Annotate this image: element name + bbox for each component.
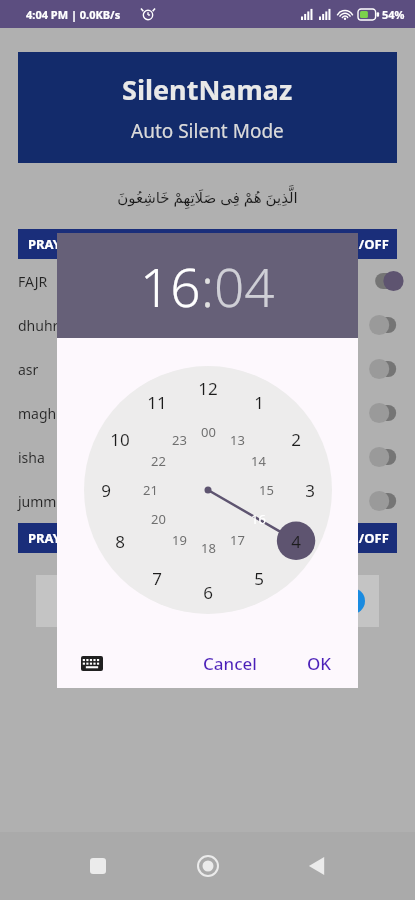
button[interactable]: Recent apps bbox=[80, 848, 116, 884]
button[interactable]: 16 bbox=[140, 250, 201, 322]
staticText: ON/OFF bbox=[338, 529, 389, 547]
staticText: 2 bbox=[291, 428, 301, 451]
staticText: 54% bbox=[382, 7, 405, 22]
button[interactable]: SilentNamaz bbox=[18, 52, 397, 163]
staticText: asr bbox=[18, 360, 357, 379]
staticText: FROM bbox=[140, 529, 239, 547]
staticText: AdMob Adaptive Banner bbox=[58, 598, 230, 618]
staticText: 20 bbox=[151, 510, 166, 528]
staticText: TO bbox=[239, 529, 338, 547]
button[interactable]: Home bbox=[190, 848, 226, 884]
staticText: الَّذِينَ هُمْ فِى صَلَاتِهِمْ خَاشِعُون… bbox=[0, 187, 415, 207]
button[interactable]: maghrib bbox=[0, 391, 415, 435]
button[interactable]: Cancel bbox=[189, 644, 271, 683]
staticText: 4:04 PM | 0.0KB/s bbox=[26, 7, 121, 22]
staticText: 23 bbox=[172, 431, 187, 449]
staticText: 8 bbox=[115, 530, 125, 553]
button[interactable]: developers.google.com bbox=[36, 575, 379, 627]
staticText: 3 bbox=[305, 479, 315, 502]
staticText: Auto Silent Mode bbox=[131, 118, 284, 144]
staticText: 14 bbox=[251, 452, 266, 470]
staticText: 10 bbox=[110, 428, 130, 451]
staticText: developers.google.com bbox=[58, 584, 157, 596]
staticText: maghrib bbox=[18, 404, 357, 423]
staticText: jumma bbox=[18, 492, 357, 511]
staticText: PRAYERS bbox=[28, 235, 140, 253]
staticText: 4 bbox=[291, 530, 301, 553]
staticText: 12 bbox=[198, 377, 218, 400]
button[interactable]: 04 bbox=[214, 250, 275, 322]
button[interactable]: Back bbox=[299, 848, 335, 884]
staticText: 21 bbox=[143, 481, 158, 499]
staticText: Test Ad bbox=[183, 584, 228, 602]
staticText: 16 bbox=[251, 510, 266, 528]
staticText: OK bbox=[307, 652, 332, 675]
staticText: 11 bbox=[147, 391, 167, 414]
staticText: FAJR bbox=[18, 272, 357, 291]
staticText: : bbox=[201, 250, 214, 322]
staticText: 1 bbox=[254, 391, 264, 414]
button[interactable]: 12 bbox=[84, 366, 332, 614]
staticText: 18 bbox=[201, 539, 216, 557]
staticText: PRAYERS bbox=[28, 529, 140, 547]
staticText: dhuhr bbox=[18, 316, 357, 335]
staticText: 6 bbox=[203, 581, 213, 604]
staticText: 5 bbox=[254, 567, 264, 590]
button[interactable]: Switch to keyboard input bbox=[77, 648, 107, 678]
staticText: 15 bbox=[259, 481, 274, 499]
button[interactable]: asr bbox=[0, 347, 415, 391]
staticText: 7 bbox=[152, 567, 162, 590]
button[interactable]: dhuhr bbox=[0, 303, 415, 347]
staticText: 13 bbox=[230, 431, 245, 449]
button[interactable]: FAJR bbox=[0, 259, 415, 303]
staticText: SilentNamaz bbox=[122, 71, 293, 108]
staticText: 00 bbox=[201, 423, 216, 441]
staticText: Cancel bbox=[203, 652, 257, 675]
staticText: 19 bbox=[172, 531, 187, 549]
staticText: ON/OFF bbox=[338, 235, 389, 253]
button[interactable]: jumma bbox=[0, 479, 415, 523]
button[interactable]: OPEN › bbox=[303, 588, 365, 614]
staticText: 9 bbox=[101, 479, 111, 502]
staticText: 17 bbox=[230, 531, 245, 549]
staticText: isha bbox=[18, 448, 357, 467]
staticText: 22 bbox=[151, 452, 166, 470]
button[interactable]: OK bbox=[293, 644, 346, 683]
button[interactable]: isha bbox=[0, 435, 415, 479]
